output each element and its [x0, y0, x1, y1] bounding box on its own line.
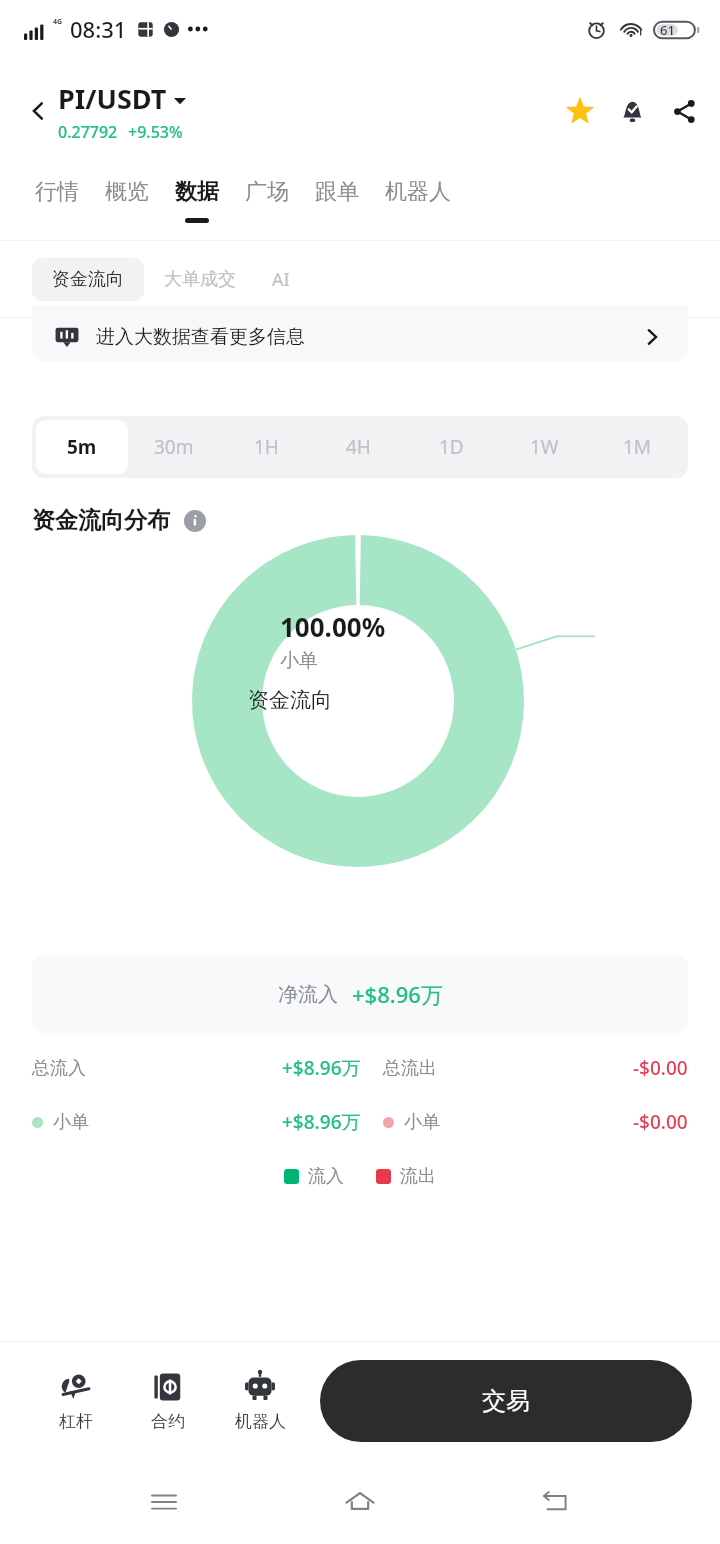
- staticText: 08:31: [70, 14, 127, 44]
- button[interactable]: 30m: [128, 420, 220, 474]
- button[interactable]: PI/USDT: [58, 80, 186, 143]
- staticText: 净流入: [278, 982, 338, 1007]
- staticText: +$8.96万: [352, 979, 443, 1009]
- button[interactable]: 杠杆: [30, 1370, 122, 1432]
- staticText: +$8.96万: [282, 1109, 361, 1135]
- button[interactable]: AI: [256, 257, 306, 302]
- staticText: 4H: [346, 434, 371, 460]
- button[interactable]: 概览: [92, 172, 162, 229]
- button[interactable]: Back: [14, 87, 62, 135]
- staticText: 1H: [254, 434, 279, 460]
- staticText: 1M: [623, 434, 652, 460]
- staticText: 资金流向: [52, 268, 124, 291]
- staticText: 进入大数据查看更多信息: [96, 325, 305, 349]
- staticText: 行情: [35, 178, 79, 206]
- staticText: 小单: [280, 649, 318, 673]
- staticText: 机器人: [235, 1411, 286, 1432]
- staticText: 大单成交: [164, 268, 236, 291]
- button[interactable]: 合约: [122, 1370, 214, 1432]
- button[interactable]: 大单成交: [144, 258, 256, 301]
- staticText: 数据: [175, 178, 219, 206]
- staticText: 小单: [404, 1111, 440, 1134]
- staticText: +$8.96万: [282, 1055, 361, 1081]
- staticText: -$0.00: [633, 1109, 688, 1135]
- staticText: 30m: [154, 434, 194, 460]
- button[interactable]: Back: [524, 1470, 588, 1534]
- staticText: 跟单: [315, 178, 359, 206]
- staticText: 机器人: [385, 178, 451, 206]
- button[interactable]: Recents: [132, 1470, 196, 1534]
- button[interactable]: 1W: [498, 420, 591, 474]
- staticText: 0.27792: [58, 121, 118, 143]
- staticText: 合约: [151, 1411, 185, 1432]
- button[interactable]: 1H: [220, 420, 312, 474]
- staticText: 广场: [245, 178, 289, 206]
- button[interactable]: Alerts: [606, 85, 658, 137]
- staticText: 总流入: [32, 1057, 86, 1080]
- staticText: 概览: [105, 178, 149, 206]
- staticText: 资金流向: [248, 687, 332, 713]
- button[interactable]: 跟单: [302, 172, 372, 229]
- button[interactable]: 数据: [162, 172, 232, 229]
- button[interactable]: Home: [328, 1470, 392, 1534]
- button[interactable]: Favorite: [554, 85, 606, 137]
- staticText: 交易: [482, 1386, 530, 1416]
- button[interactable]: 1M: [591, 420, 684, 474]
- staticText: 4G: [53, 17, 63, 27]
- button[interactable]: 1D: [405, 420, 498, 474]
- staticText: 100.00%: [280, 609, 386, 644]
- button[interactable]: Info: [184, 510, 206, 532]
- button[interactable]: 行情: [22, 172, 92, 229]
- staticText: 流入: [308, 1165, 344, 1188]
- button[interactable]: 机器人: [214, 1370, 306, 1432]
- staticText: -$0.00: [633, 1055, 688, 1081]
- staticText: 1D: [439, 434, 464, 460]
- staticText: 总流出: [383, 1057, 437, 1080]
- staticText: AI: [272, 267, 290, 292]
- staticText: +9.53%: [128, 121, 183, 143]
- button[interactable]: 5m: [36, 420, 128, 474]
- staticText: 流出: [400, 1165, 436, 1188]
- button[interactable]: 4H: [312, 420, 405, 474]
- button[interactable]: Share: [658, 85, 710, 137]
- staticText: 61: [660, 21, 675, 39]
- staticText: 1W: [530, 434, 559, 460]
- staticText: 杠杆: [59, 1411, 93, 1432]
- button[interactable]: 交易: [320, 1360, 692, 1442]
- button[interactable]: 进入大数据查看更多信息: [32, 306, 688, 362]
- staticText: PI/USDT: [58, 80, 167, 117]
- button[interactable]: 机器人: [372, 172, 464, 229]
- staticText: 5m: [67, 434, 97, 460]
- button[interactable]: 资金流向: [32, 258, 144, 301]
- button[interactable]: 广场: [232, 172, 302, 229]
- staticText: 小单: [53, 1111, 89, 1134]
- staticText: 资金流向分布: [32, 506, 170, 535]
